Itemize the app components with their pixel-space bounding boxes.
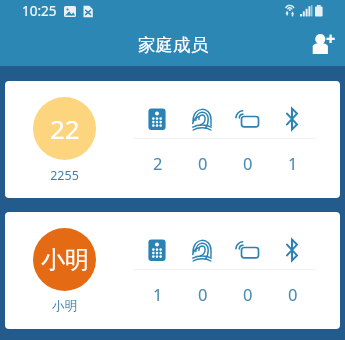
button[interactable]: 22 (5, 81, 340, 198)
button[interactable]: Card (226, 237, 268, 263)
staticText: 1 (288, 152, 298, 174)
staticText: 1 (153, 283, 163, 305)
button[interactable]: Bluetooth (271, 106, 313, 132)
staticText: 2 (153, 152, 163, 174)
button[interactable]: Card (226, 106, 268, 132)
staticText: 10:25 (22, 2, 57, 20)
staticText: 家庭成员 (138, 34, 208, 56)
staticText: 0 (243, 283, 253, 305)
staticText: 0 (243, 152, 253, 174)
button[interactable]: Fingerprint (181, 106, 223, 132)
staticText: 22 (50, 111, 80, 146)
button[interactable]: Password (136, 237, 178, 263)
button[interactable]: Bluetooth (271, 237, 313, 263)
button[interactable]: Fingerprint (181, 237, 223, 263)
staticText: 小明 (15, 298, 114, 314)
button[interactable]: 小明 (5, 212, 340, 329)
staticText: 0 (288, 283, 298, 305)
staticText: 0 (198, 152, 208, 174)
button[interactable]: Password (136, 106, 178, 132)
staticText: 小明 (41, 245, 89, 275)
button[interactable]: Add member (303, 25, 343, 65)
staticText: 0 (198, 283, 208, 305)
staticText: 2255 (15, 167, 114, 184)
